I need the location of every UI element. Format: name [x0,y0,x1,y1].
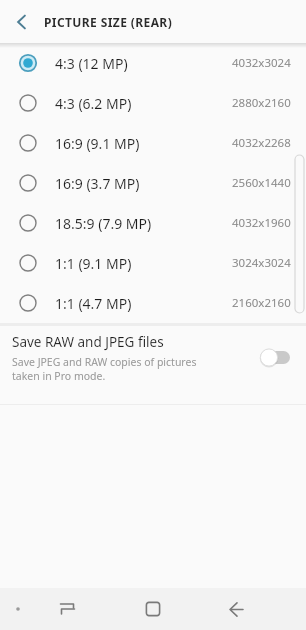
button[interactable]: 4:3 (6.2 MP) [0,83,306,123]
button[interactable]: 1:1 (9.1 MP) [0,243,306,283]
staticText: PICTURE SIZE (REAR) [44,14,173,30]
staticText: 4032x3024 [232,55,291,71]
staticText: Save JPEG and RAW copies of pictures tak… [12,355,197,383]
staticText: 2160x2160 [232,295,291,311]
staticText: 3024x3024 [232,255,291,271]
button[interactable] [214,588,258,630]
staticText: 4:3 (12 MP) [55,54,128,73]
button[interactable]: 18.5:9 (7.9 MP) [0,203,306,243]
staticText: 4032x1960 [232,215,291,231]
button[interactable]: Save RAW and JPEG files [0,326,306,404]
staticText: 4032x2268 [232,135,291,151]
staticText: 18.5:9 (7.9 MP) [55,214,152,233]
staticText: Save RAW and JPEG files [12,333,164,351]
staticText: 1:1 (9.1 MP) [55,254,132,273]
button[interactable]: 16:9 (3.7 MP) [0,163,306,203]
button[interactable] [0,0,44,43]
button[interactable]: 4:3 (12 MP) [0,43,306,83]
button[interactable] [47,588,87,630]
staticText: 2880x2160 [232,95,291,111]
staticText: 16:9 (3.7 MP) [55,174,140,193]
button[interactable]: 16:9 (9.1 MP) [0,123,306,163]
staticText: 1:1 (4.7 MP) [55,294,132,313]
staticText: 2560x1440 [232,175,291,191]
staticText: 4:3 (6.2 MP) [55,94,132,113]
staticText: 16:9 (9.1 MP) [55,134,140,153]
button[interactable] [131,588,175,630]
button[interactable]: 1:1 (4.7 MP) [0,283,306,323]
